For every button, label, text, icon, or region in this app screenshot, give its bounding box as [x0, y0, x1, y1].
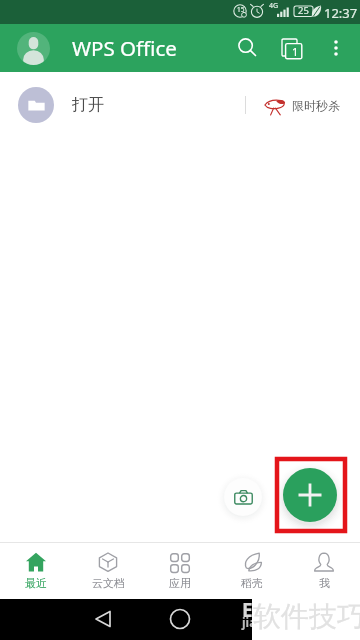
button[interactable]: 稻壳 [216, 543, 288, 599]
staticText: E [242, 597, 253, 623]
staticText: 应用 [169, 576, 191, 590]
button[interactable]: 应用 [144, 543, 216, 599]
staticText: 最近 [25, 576, 47, 590]
button[interactable]: Scan with camera [224, 478, 262, 516]
button[interactable]: Account [17, 32, 50, 65]
button[interactable]: More options [314, 26, 358, 70]
button[interactable]: 打开 [0, 72, 245, 138]
button[interactable]: 云文档 [72, 543, 144, 599]
staticText: 4G [269, 1, 279, 11]
staticText: 稻壳 [241, 576, 263, 590]
staticText: 云文档 [92, 576, 125, 590]
button[interactable]: Create new document [283, 468, 337, 522]
button[interactable]: Search [226, 26, 270, 70]
button[interactable]: 限时秒杀 [246, 72, 360, 138]
staticText: 15 [237, 5, 245, 14]
button[interactable]: 我 [288, 543, 360, 599]
staticText: 12:37 [324, 4, 358, 22]
staticText: 1 [292, 44, 299, 59]
staticText: jia [242, 614, 257, 630]
staticText: 25 [298, 4, 309, 17]
staticText: 软件技巧 [253, 599, 360, 634]
staticText: 我 [319, 576, 330, 590]
staticText: WPS Office [72, 34, 177, 62]
button[interactable]: 最近 [0, 543, 72, 599]
staticText: 限时秒杀 [292, 98, 340, 113]
staticText: 打开 [72, 95, 104, 115]
button[interactable]: Tabs [270, 26, 314, 70]
